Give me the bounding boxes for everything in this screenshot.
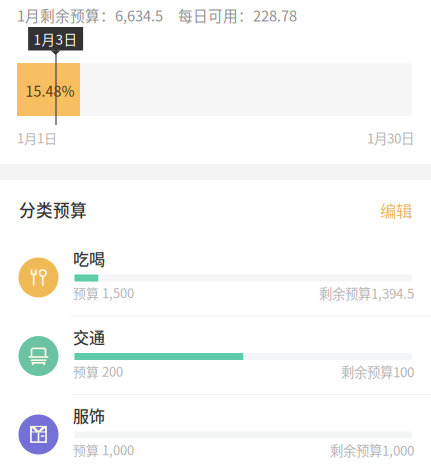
- staticText: 剩余预算1,394.5: [319, 283, 414, 303]
- staticText: 剩余预算1,000: [330, 440, 414, 460]
- staticText: 交通: [73, 325, 105, 348]
- button[interactable]: 服饰: [0, 395, 431, 474]
- staticText: 15.48%: [25, 80, 74, 101]
- staticText: 1月3日: [34, 29, 78, 49]
- staticText: 1月剩余预算：6,634.5 每日可用：228.78: [17, 4, 297, 26]
- staticText: 1月1日: [17, 128, 57, 147]
- staticText: 服饰: [73, 404, 105, 427]
- staticText: 预算 1,500: [73, 283, 134, 302]
- staticText: 剩余预算100: [341, 362, 414, 381]
- button[interactable]: 吃喝: [0, 238, 431, 317]
- staticText: 1月30日: [367, 128, 414, 147]
- staticText: 编辑: [380, 198, 412, 222]
- button[interactable]: 编辑: [312, 195, 412, 225]
- staticText: 分类预算: [19, 197, 87, 221]
- staticText: 预算 200: [73, 362, 123, 380]
- staticText: 吃喝: [73, 247, 105, 270]
- button[interactable]: 交通: [0, 317, 431, 395]
- staticText: 预算 1,000: [73, 440, 134, 459]
